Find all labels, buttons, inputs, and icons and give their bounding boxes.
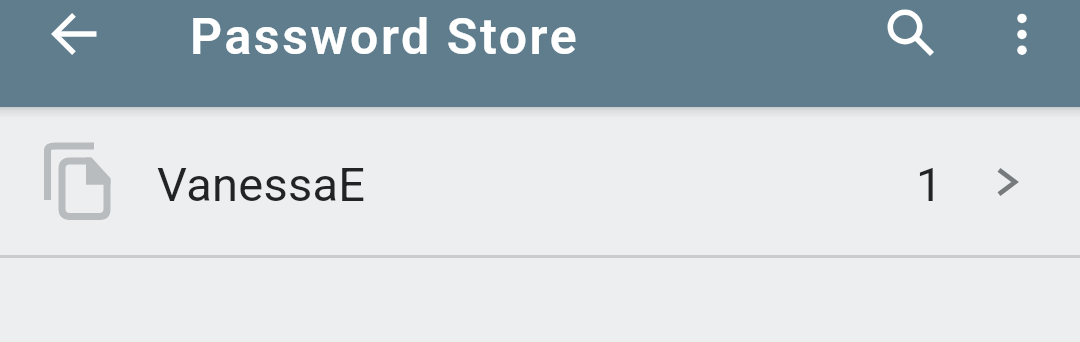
staticText: VanessaE (157, 157, 366, 212)
button[interactable]: More options (969, 0, 1075, 87)
staticText: 1 (916, 157, 943, 212)
button[interactable]: Back (0, 0, 120, 87)
button[interactable]: Search (857, 0, 963, 87)
staticText: Password Store (190, 8, 580, 67)
button[interactable]: VanessaE (0, 107, 1080, 257)
